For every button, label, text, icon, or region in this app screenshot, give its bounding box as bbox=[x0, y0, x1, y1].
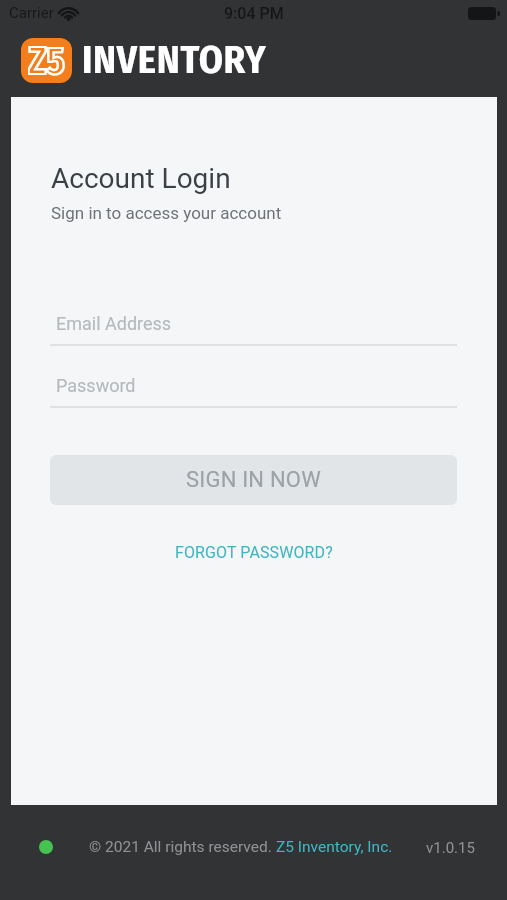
staticText: v1.0.15 bbox=[426, 839, 475, 857]
staticText: Carrier bbox=[9, 4, 54, 22]
button[interactable]: Password bbox=[50, 359, 457, 407]
staticText: Z5 bbox=[28, 38, 65, 83]
staticText: Email Address bbox=[56, 313, 172, 334]
button[interactable]: Email Address bbox=[50, 297, 457, 345]
staticText: SIGN IN NOW bbox=[186, 467, 321, 493]
button[interactable]: FORGOT PASSWORD? bbox=[175, 543, 333, 562]
staticText: 9:04 PM bbox=[224, 4, 284, 23]
staticText: INVENTORY bbox=[82, 37, 267, 83]
staticText: Z5 Inventory, Inc. bbox=[276, 838, 393, 856]
button[interactable]: SIGN IN NOW bbox=[50, 455, 457, 505]
staticText: Account Login bbox=[51, 162, 231, 195]
staticText: FORGOT PASSWORD? bbox=[175, 543, 333, 562]
staticText: © 2021 All rights reserved. bbox=[89, 838, 276, 856]
staticText: Password bbox=[56, 375, 136, 396]
staticText: Sign in to access your account bbox=[51, 203, 282, 223]
button[interactable]: Z5 Inventory, Inc. bbox=[276, 838, 393, 856]
